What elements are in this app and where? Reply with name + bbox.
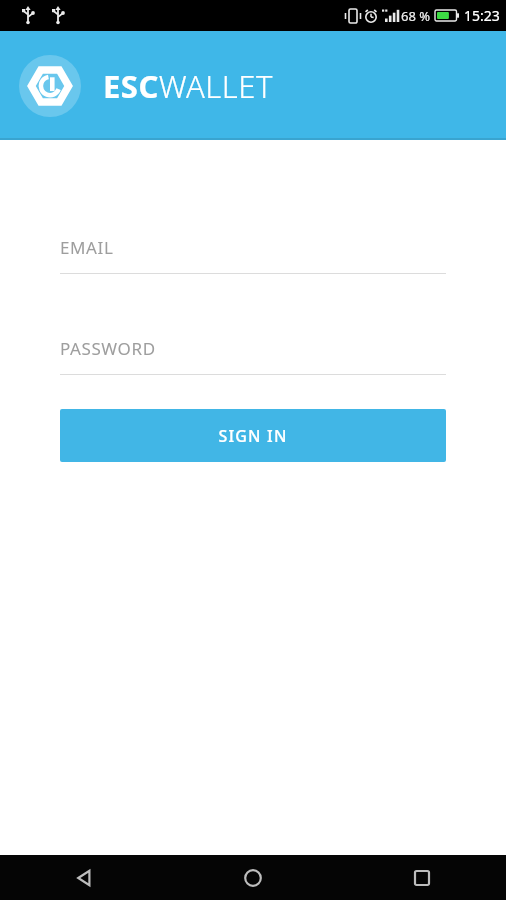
button[interactable]: Home	[229, 855, 277, 900]
button[interactable]: EMAIL	[60, 236, 446, 274]
staticText: 15:23	[464, 6, 500, 25]
button[interactable]: SIGN IN	[60, 409, 446, 462]
button[interactable]: Back	[60, 855, 108, 900]
button[interactable]: PASSWORD	[60, 337, 446, 375]
staticText: SIGN IN	[218, 425, 288, 447]
staticText: ESCWALLET	[103, 65, 273, 107]
button[interactable]: Recent apps	[398, 855, 446, 900]
staticText: EMAIL	[60, 236, 114, 259]
staticText: 68 %	[401, 7, 431, 25]
staticText: PASSWORD	[60, 337, 156, 360]
